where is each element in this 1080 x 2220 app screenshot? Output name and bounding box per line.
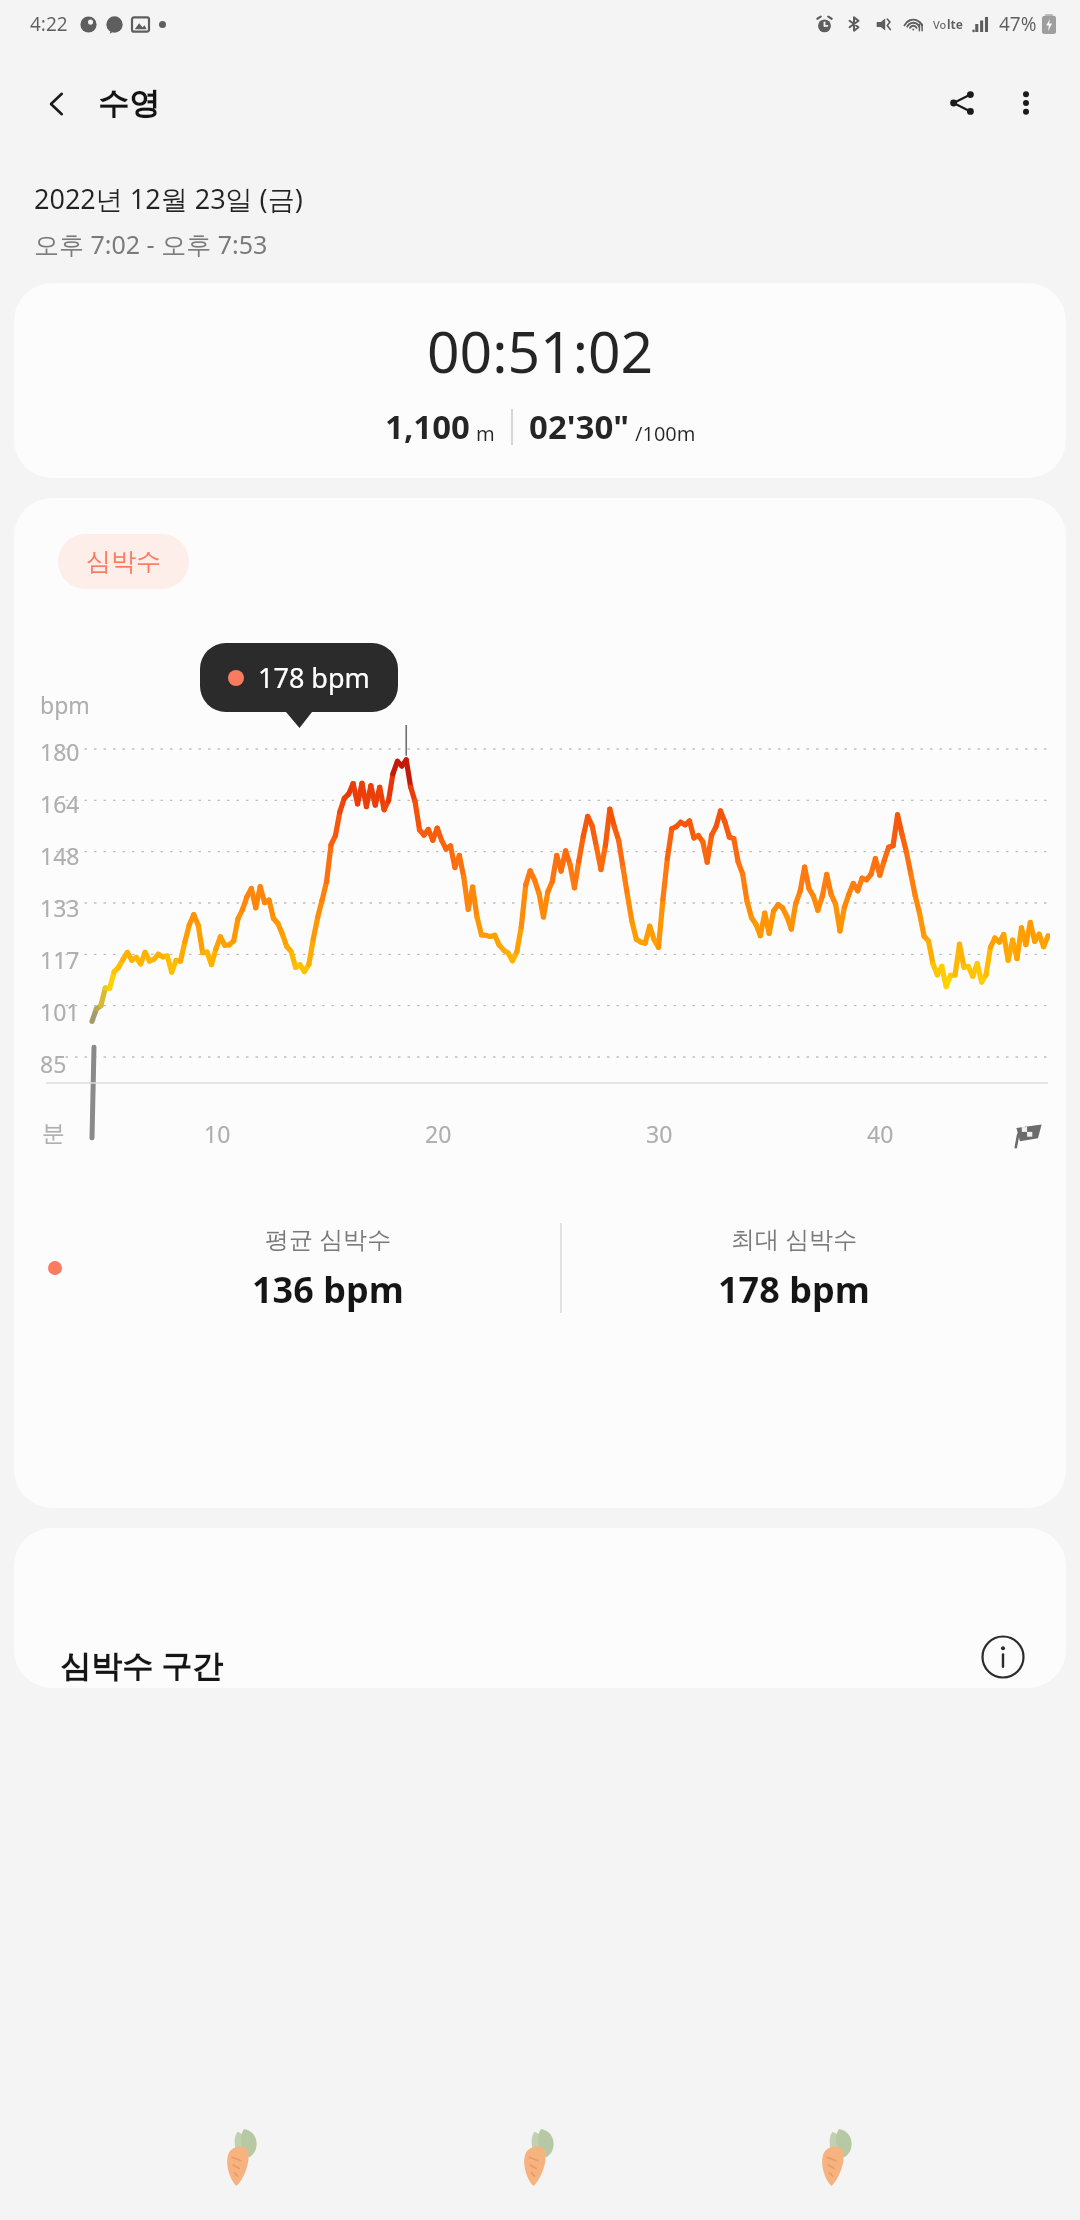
staticText: 20 xyxy=(425,1118,452,1149)
staticText: 30 xyxy=(646,1118,673,1149)
staticText: 47% xyxy=(999,11,1037,37)
staticText: 178 bpm xyxy=(258,659,370,696)
staticText: 136 bpm xyxy=(252,1265,404,1314)
staticText: 최대 심박수 xyxy=(731,1222,858,1255)
staticText: 4:22 xyxy=(30,11,68,37)
button[interactable]: 178 bpm xyxy=(200,643,398,712)
button[interactable]: Recents xyxy=(188,2101,298,2211)
staticText: 40 xyxy=(867,1118,894,1149)
staticText: 178 bpm xyxy=(718,1265,870,1314)
button[interactable]: 00:51:02 xyxy=(14,283,1066,478)
staticText: m xyxy=(476,420,495,447)
staticText: 평균 심박수 xyxy=(265,1222,392,1255)
staticText: 수영 xyxy=(98,84,160,123)
button[interactable]: Home xyxy=(485,2101,595,2211)
staticText: 심박수 xyxy=(86,546,161,577)
button[interactable]: Information xyxy=(976,1630,1030,1684)
button[interactable]: Share xyxy=(930,71,994,135)
button[interactable]: More options xyxy=(994,71,1058,135)
staticText: 심박수 구간 xyxy=(60,1644,224,1686)
staticText: 133 xyxy=(40,892,80,923)
staticText: 2022년 12월 23일 (금) xyxy=(34,180,303,217)
staticText: 85 xyxy=(40,1048,67,1079)
button[interactable]: 심박수 xyxy=(14,498,1066,1508)
button[interactable]: Back xyxy=(30,70,172,137)
staticText: 10 xyxy=(204,1118,231,1149)
other: Finish xyxy=(1014,1119,1044,1149)
staticText: 분 xyxy=(42,1119,65,1148)
other: Back xyxy=(42,89,72,119)
staticText: 164 xyxy=(40,788,80,819)
staticText: 180 xyxy=(40,736,80,767)
staticText: 148 xyxy=(40,840,80,871)
staticText: 오후 7:02 - 오후 7:53 xyxy=(34,227,268,261)
button[interactable]: Back xyxy=(783,2101,893,2211)
staticText: lte xyxy=(947,16,963,32)
button[interactable]: 심박수 xyxy=(58,534,189,589)
staticText: Vo xyxy=(933,17,947,32)
staticText: 1,100 xyxy=(385,404,470,449)
staticText: bpm xyxy=(40,689,90,720)
staticText: 00:51:02 xyxy=(427,312,654,390)
staticText: 02'30" xyxy=(529,404,630,449)
staticText: /100m xyxy=(635,420,696,447)
staticText: 101 xyxy=(40,996,80,1027)
staticText: 117 xyxy=(40,944,80,975)
button[interactable]: 심박수 구간 xyxy=(14,1528,1066,1688)
